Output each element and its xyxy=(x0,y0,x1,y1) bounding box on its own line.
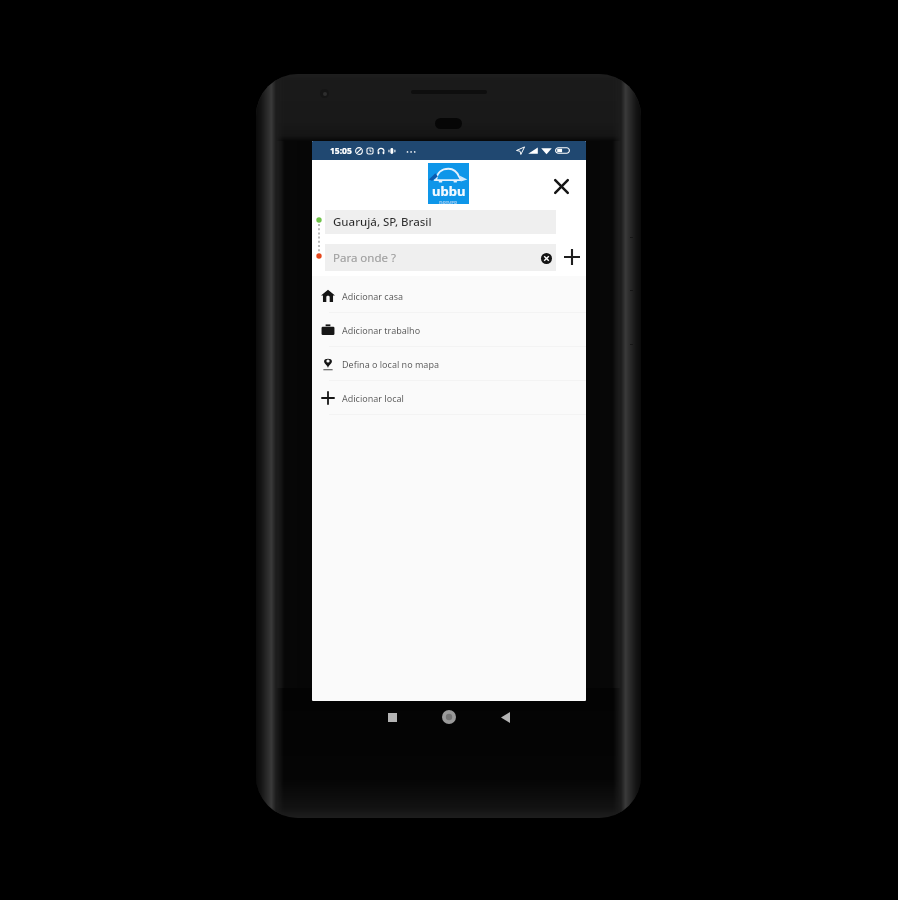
button[interactable]: Guarujá, SP, Brasil xyxy=(325,210,556,234)
button[interactable]: Para onde ? xyxy=(325,244,556,271)
staticText: Guarujá, SP, Brasil xyxy=(333,214,432,230)
button[interactable]: Adicionar trabalho xyxy=(312,313,586,347)
staticText: Adicionar trabalho xyxy=(342,324,421,336)
button[interactable]: Defina o local no mapa xyxy=(312,347,586,381)
staticText: 15:05 xyxy=(330,145,352,157)
staticText: Para onde ? xyxy=(333,250,396,266)
button[interactable]: Adicionar local xyxy=(312,381,586,415)
staticText: Adicionar casa xyxy=(342,290,404,302)
staticText: Defina o local no mapa xyxy=(342,358,439,370)
staticText: DRIVER xyxy=(439,200,458,204)
button[interactable]: Adicionar casa xyxy=(312,279,586,313)
button[interactable]: Add stop xyxy=(559,244,585,270)
button[interactable]: Back xyxy=(484,701,526,733)
button[interactable]: Recent apps xyxy=(371,701,413,733)
button[interactable]: ubbu Driver xyxy=(428,163,469,204)
staticText: ubbu xyxy=(432,182,466,200)
button[interactable]: Clear destination xyxy=(534,246,558,270)
button[interactable]: Close xyxy=(549,174,573,198)
staticText: Adicionar local xyxy=(342,392,404,404)
button[interactable]: Home xyxy=(428,701,470,733)
